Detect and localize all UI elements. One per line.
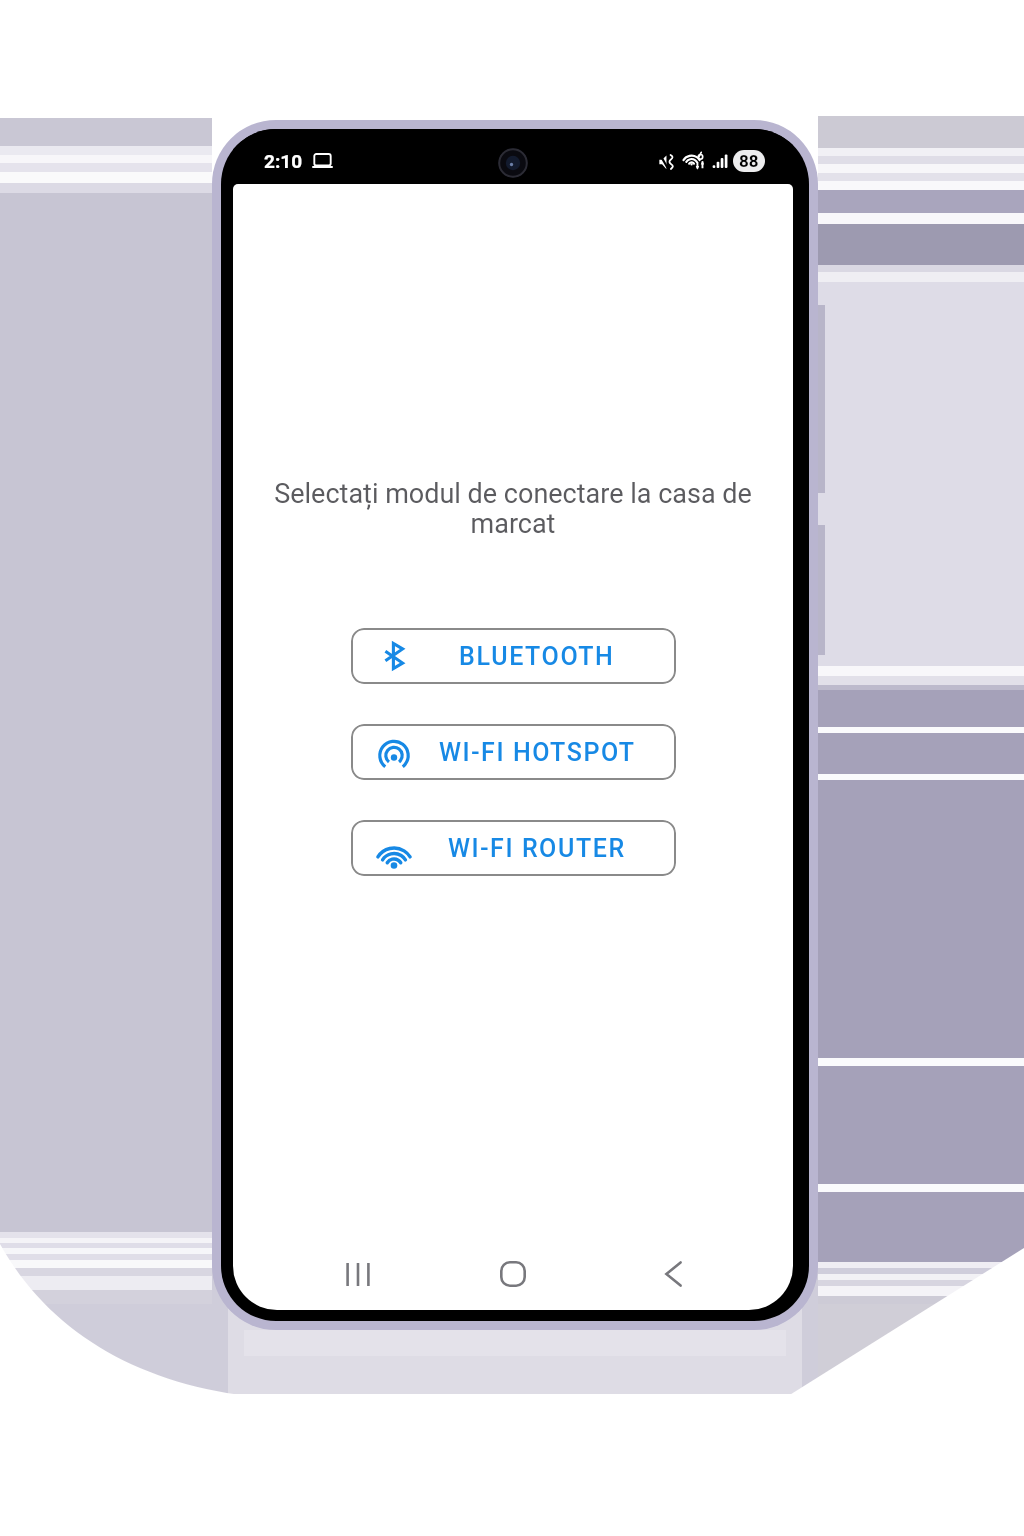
button[interactable]: WI-FI HOTSPOT — [351, 724, 676, 780]
button[interactable]: Recent apps — [318, 1238, 398, 1310]
button[interactable]: WI-FI ROUTER — [351, 820, 676, 876]
staticText: 88 — [739, 151, 759, 171]
button[interactable]: Home — [473, 1238, 553, 1310]
staticText: Selectați modul de conectare la casa de … — [268, 478, 758, 539]
staticText: 2:10 — [264, 150, 303, 172]
button[interactable]: Back — [633, 1238, 713, 1310]
staticText: WI-FI HOTSPOT — [439, 738, 636, 767]
staticText: WI-FI ROUTER — [448, 834, 626, 863]
button[interactable]: BLUETOOTH — [351, 628, 676, 684]
staticText: BLUETOOTH — [459, 642, 615, 671]
